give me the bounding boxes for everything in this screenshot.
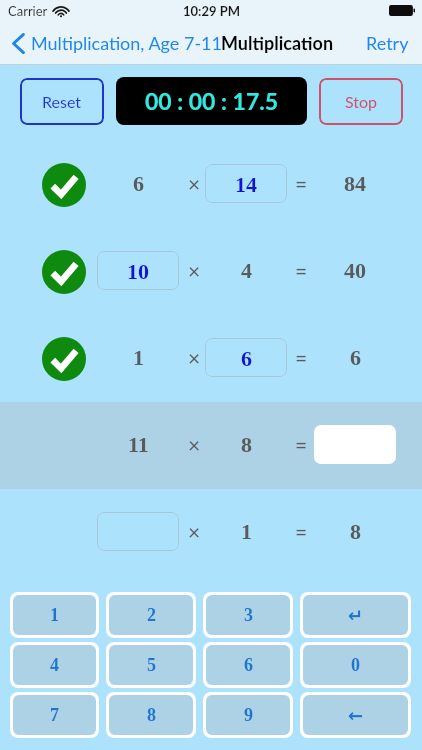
staticText: 84 xyxy=(344,171,366,195)
staticText: × xyxy=(188,432,201,457)
staticText: 1 xyxy=(50,605,59,625)
staticText: Retry xyxy=(366,32,409,54)
button[interactable]: 6 xyxy=(206,645,290,685)
button[interactable]: 0 xyxy=(303,645,408,685)
button[interactable]: 10 xyxy=(97,251,179,290)
staticText: 11 xyxy=(128,432,149,456)
staticText: 6 xyxy=(241,346,252,370)
staticText: = xyxy=(295,171,308,196)
button[interactable]: Multiplication, Age 7-11 xyxy=(0,32,226,54)
other: Correct xyxy=(42,250,86,294)
staticText: 0 xyxy=(351,655,360,675)
staticText: × xyxy=(188,519,201,544)
staticText: 14 xyxy=(235,172,257,196)
button[interactable]: 14 xyxy=(205,164,287,203)
button[interactable]: Correct xyxy=(0,141,422,228)
staticText: 4 xyxy=(241,258,252,282)
staticText: 5 xyxy=(147,655,156,675)
button[interactable]: 9 xyxy=(206,695,290,735)
button[interactable]: Reset xyxy=(20,78,104,125)
staticText: 8 xyxy=(241,432,252,456)
staticText: = xyxy=(295,258,308,283)
staticText: = xyxy=(295,432,308,457)
button[interactable]: Enter xyxy=(303,595,408,635)
staticText: × xyxy=(188,171,201,196)
staticText: 7 xyxy=(50,705,59,725)
staticText: 8 xyxy=(350,519,361,543)
staticText: 10 xyxy=(127,259,149,283)
staticText: ↵ xyxy=(348,605,364,626)
staticText: 2 xyxy=(147,605,156,625)
staticText: Carrier xyxy=(8,3,48,19)
staticText: Multiplication xyxy=(221,32,334,54)
button[interactable]: Retry xyxy=(353,26,422,60)
staticText: Multiplication, Age 7-11 xyxy=(31,32,222,54)
other: Wi-Fi xyxy=(54,6,68,17)
staticText: Reset xyxy=(42,92,82,111)
staticText: × xyxy=(188,345,201,370)
button[interactable]: Correct xyxy=(0,228,422,315)
staticText: 6 xyxy=(244,655,253,675)
staticText: = xyxy=(295,519,308,544)
button[interactable]: 5 xyxy=(109,645,193,685)
staticText: = xyxy=(295,345,308,370)
staticText: 10:29 PM xyxy=(183,3,240,19)
staticText: 9 xyxy=(244,705,253,725)
staticText: 00 : 00 : 17.5 xyxy=(145,87,279,115)
staticText: Stop xyxy=(345,92,378,111)
staticText: × xyxy=(188,258,201,283)
button[interactable] xyxy=(97,512,179,551)
staticText: ← xyxy=(348,705,364,726)
button[interactable]: 2 xyxy=(109,595,193,635)
button[interactable]: Stop xyxy=(319,78,403,125)
button[interactable]: 1 xyxy=(13,595,96,635)
staticText: 4 xyxy=(50,655,59,675)
staticText: 40 xyxy=(344,258,366,282)
button[interactable]: Backspace xyxy=(303,695,408,735)
staticText: 8 xyxy=(147,705,156,725)
other: Correct xyxy=(42,337,86,381)
button[interactable]: × xyxy=(0,489,422,576)
button[interactable]: Correct xyxy=(0,315,422,402)
button[interactable]: 8 xyxy=(109,695,193,735)
staticText: 3 xyxy=(244,605,253,625)
staticText: 6 xyxy=(350,345,361,369)
staticText: 1 xyxy=(133,345,144,369)
staticText: 6 xyxy=(133,171,144,195)
other: Correct xyxy=(42,163,86,207)
button[interactable] xyxy=(314,425,396,464)
button[interactable]: 3 xyxy=(206,595,290,635)
button[interactable]: 6 xyxy=(205,338,287,377)
button[interactable]: 11 xyxy=(0,402,422,489)
button[interactable]: 4 xyxy=(13,645,96,685)
button[interactable]: 7 xyxy=(13,695,96,735)
staticText: 1 xyxy=(241,519,252,543)
